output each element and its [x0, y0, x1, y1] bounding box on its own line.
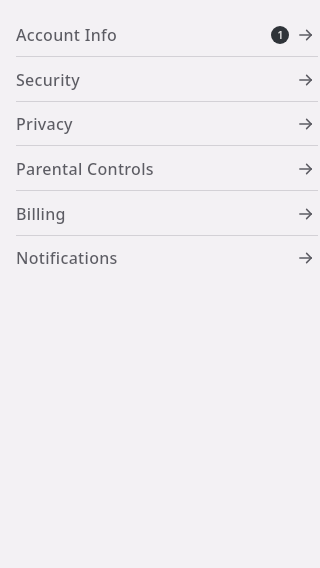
button[interactable]: Account Info: [0, 12, 320, 57]
staticText: Privacy: [16, 113, 73, 135]
staticText: Notifications: [16, 247, 118, 269]
staticText: Security: [16, 69, 80, 91]
button[interactable]: Security: [0, 57, 320, 102]
button[interactable]: Privacy: [0, 101, 320, 146]
button[interactable]: Notifications: [0, 235, 320, 280]
button[interactable]: Billing: [0, 191, 320, 236]
other: Open: [299, 29, 312, 41]
other: Open: [299, 208, 312, 220]
staticText: 1: [277, 28, 284, 42]
staticText: Account Info: [16, 24, 118, 46]
staticText: Parental Controls: [16, 158, 154, 180]
other: Open: [299, 252, 312, 264]
staticText: Billing: [16, 203, 66, 225]
button[interactable]: Parental Controls: [0, 146, 320, 191]
other: Open: [299, 163, 312, 175]
other: Open: [299, 118, 312, 130]
other: Open: [299, 74, 312, 86]
